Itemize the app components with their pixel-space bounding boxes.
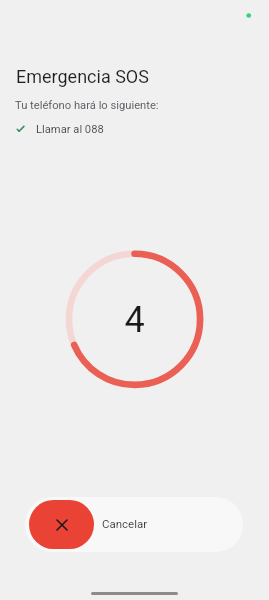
staticText: Tu teléfono hará lo siguiente: [15, 99, 159, 112]
staticText: Llamar al 088 [36, 123, 104, 136]
button[interactable]: Cancelar [25, 497, 243, 552]
staticText: Emergencia SOS [16, 66, 149, 87]
staticText: 4 [124, 299, 145, 341]
staticText: Cancelar [102, 517, 148, 530]
button[interactable]: Cancelar [29, 500, 94, 549]
